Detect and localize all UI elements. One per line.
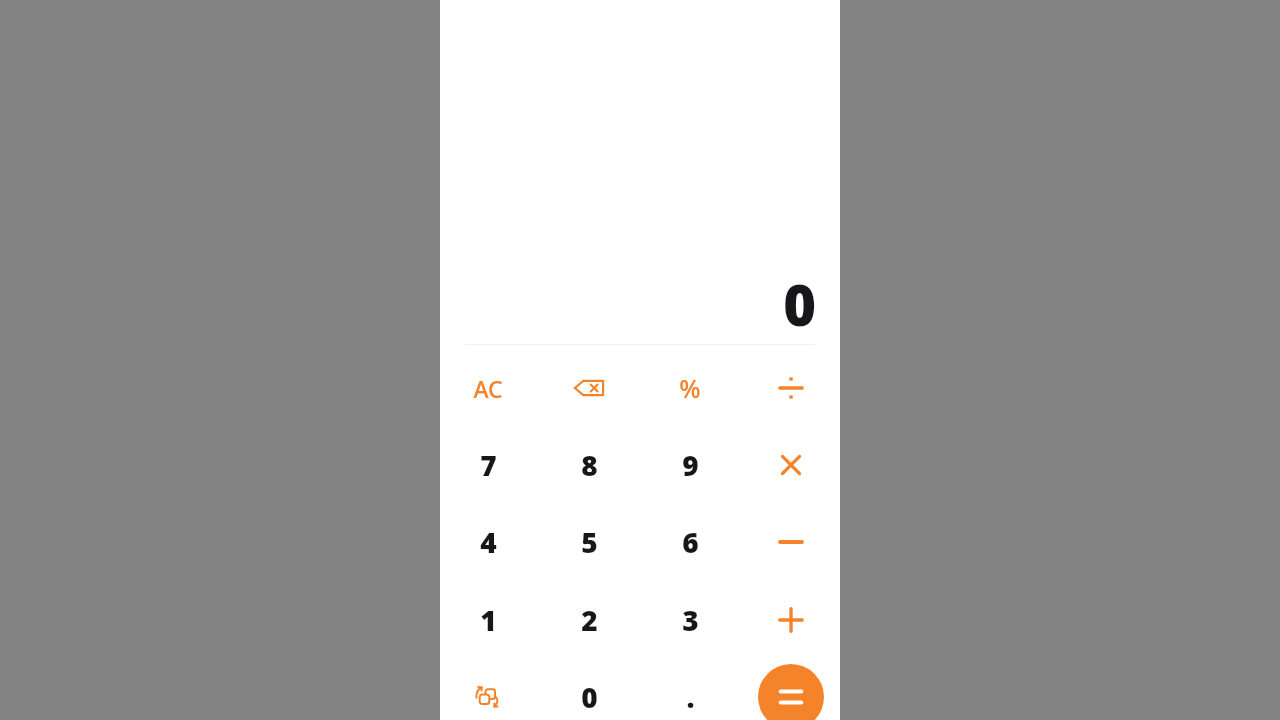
button[interactable]: 1 [452,584,524,656]
button[interactable]: Backspace [553,352,625,424]
staticText: . [686,678,695,716]
button[interactable]: Add [755,584,827,656]
button[interactable]: Unit converter [452,661,524,720]
staticText: % [679,371,701,405]
button[interactable]: Percent [654,352,726,424]
staticText: 0 [581,678,598,716]
staticText: 3 [682,601,699,639]
button[interactable]: 3 [654,584,726,656]
button[interactable]: 8 [553,429,625,501]
staticText: 0 [783,266,816,342]
staticText: 6 [682,523,699,561]
staticText: 4 [480,523,497,561]
staticText: 2 [581,601,598,639]
staticText: AC [473,373,503,404]
staticText: 1 [480,601,497,639]
button[interactable]: Equals [758,664,824,720]
button[interactable]: 7 [452,429,524,501]
staticText: 5 [581,523,598,561]
button[interactable]: 6 [654,506,726,578]
button[interactable]: 4 [452,506,524,578]
button[interactable]: Divide [755,352,827,424]
button[interactable]: 5 [553,506,625,578]
staticText: 7 [480,446,497,484]
button[interactable]: Subtract [755,506,827,578]
button[interactable]: . [654,661,726,720]
button[interactable]: 0 [553,661,625,720]
button[interactable]: Multiply [755,429,827,501]
button[interactable]: All clear [452,352,524,424]
button[interactable]: 9 [654,429,726,501]
button[interactable]: 2 [553,584,625,656]
staticText: 8 [581,446,598,484]
staticText: 9 [682,446,699,484]
